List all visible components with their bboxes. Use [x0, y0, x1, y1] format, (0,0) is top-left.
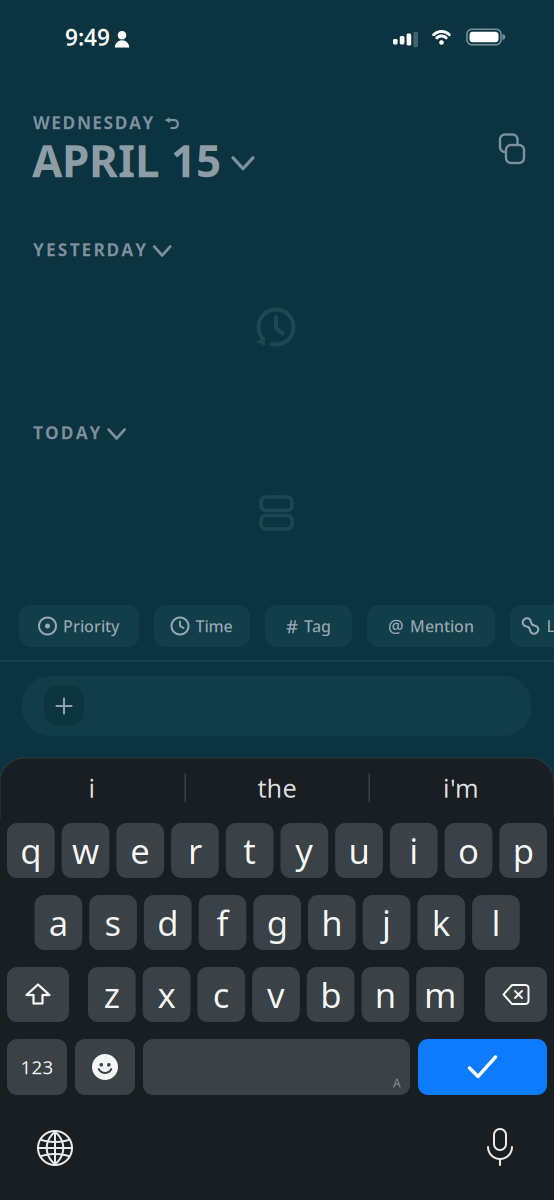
staticText: o [458, 827, 479, 873]
button[interactable] [22, 676, 531, 736]
button[interactable]: i [390, 823, 438, 878]
button[interactable]: s [89, 895, 137, 950]
staticText: d [157, 899, 178, 945]
staticText: E [51, 111, 61, 134]
button[interactable]: r [171, 823, 219, 878]
button[interactable]: v [252, 967, 300, 1022]
staticText: i [88, 771, 95, 805]
staticText: D [63, 111, 76, 134]
staticText: A [121, 238, 133, 261]
staticText: f [216, 899, 228, 945]
staticText: S [103, 111, 113, 134]
staticText: p [513, 827, 534, 873]
staticText: # [286, 614, 298, 638]
staticText: h [321, 899, 342, 945]
button[interactable]: w [62, 823, 109, 878]
staticText: E [82, 238, 92, 261]
button[interactable]: APRIL 15 [32, 131, 253, 189]
staticText: Y [135, 238, 146, 261]
staticText: D [61, 421, 74, 444]
staticText: Link [546, 615, 554, 637]
staticText: m [424, 971, 456, 1017]
button[interactable]: n [361, 967, 409, 1022]
staticText: D [115, 111, 128, 134]
button[interactable]: T [33, 421, 125, 444]
button[interactable]: y [280, 823, 328, 878]
button[interactable]: u [335, 823, 383, 878]
staticText: E [46, 238, 56, 261]
staticText: s [105, 899, 122, 945]
button[interactable] [7, 967, 69, 1022]
button[interactable]: h [308, 895, 356, 950]
button[interactable]: j [363, 895, 410, 950]
staticText: Y [142, 111, 153, 134]
staticText: e [130, 827, 150, 873]
button[interactable]: k [417, 895, 465, 950]
staticText: b [320, 971, 341, 1017]
button[interactable]: W [33, 111, 178, 134]
staticText: W [33, 111, 50, 134]
button[interactable] [44, 686, 84, 726]
staticText: r [188, 827, 202, 873]
staticText: T [33, 421, 43, 444]
button[interactable]: t [226, 823, 273, 878]
staticText: A [76, 421, 88, 444]
button[interactable]: f [199, 895, 246, 950]
button[interactable]: Y [33, 238, 170, 261]
button[interactable]: l [472, 895, 520, 950]
staticText: i'm [443, 771, 479, 805]
button[interactable]: @ [367, 605, 495, 647]
staticText: A [129, 111, 141, 134]
button[interactable]: g [253, 895, 301, 950]
button[interactable]: e [116, 823, 164, 878]
button[interactable]: Link [510, 605, 554, 647]
staticText: v [267, 971, 285, 1017]
button[interactable]: # [265, 605, 352, 647]
button[interactable] [486, 1129, 514, 1166]
staticText: w [72, 827, 99, 873]
button[interactable]: Time [154, 605, 250, 647]
button[interactable]: z [88, 967, 136, 1022]
staticText: E [92, 111, 102, 134]
button[interactable] [418, 1039, 547, 1095]
staticText: the [257, 771, 296, 805]
button[interactable]: b [307, 967, 354, 1022]
staticText: k [432, 899, 451, 945]
button[interactable]: o [445, 823, 492, 878]
staticText: A [393, 1075, 401, 1091]
staticText: D [106, 238, 119, 261]
staticText: S [58, 238, 68, 261]
button[interactable]: 123 [7, 1039, 67, 1095]
staticText: j [382, 899, 391, 945]
button[interactable]: a [34, 895, 82, 950]
button[interactable] [497, 129, 521, 158]
staticText: @ [388, 614, 404, 637]
button[interactable]: Priority [19, 605, 139, 647]
button[interactable]: m [416, 967, 464, 1022]
button[interactable]: q [7, 823, 55, 878]
button[interactable]: d [144, 895, 192, 950]
staticText: y [295, 827, 313, 873]
staticText: R [93, 238, 104, 261]
button[interactable]: p [499, 823, 547, 878]
button[interactable] [75, 1039, 135, 1095]
button[interactable]: the [217, 766, 337, 810]
button[interactable]: x [143, 967, 190, 1022]
button[interactable]: i [32, 766, 152, 810]
staticText: i [409, 827, 418, 873]
staticText: Priority [63, 615, 119, 637]
button[interactable] [38, 1131, 72, 1165]
staticText: q [20, 827, 41, 873]
staticText: Tag [304, 615, 331, 637]
button[interactable]: i'm [401, 766, 521, 810]
staticText: Y [90, 421, 101, 444]
button[interactable] [485, 967, 547, 1022]
button[interactable]: A [143, 1039, 410, 1095]
staticText: l [491, 899, 500, 945]
staticText: Mention [410, 615, 474, 637]
staticText: 9:49 [65, 22, 110, 52]
button[interactable]: c [197, 967, 245, 1022]
staticText: z [104, 971, 120, 1017]
staticText: O [45, 421, 59, 444]
staticText: n [375, 971, 396, 1017]
